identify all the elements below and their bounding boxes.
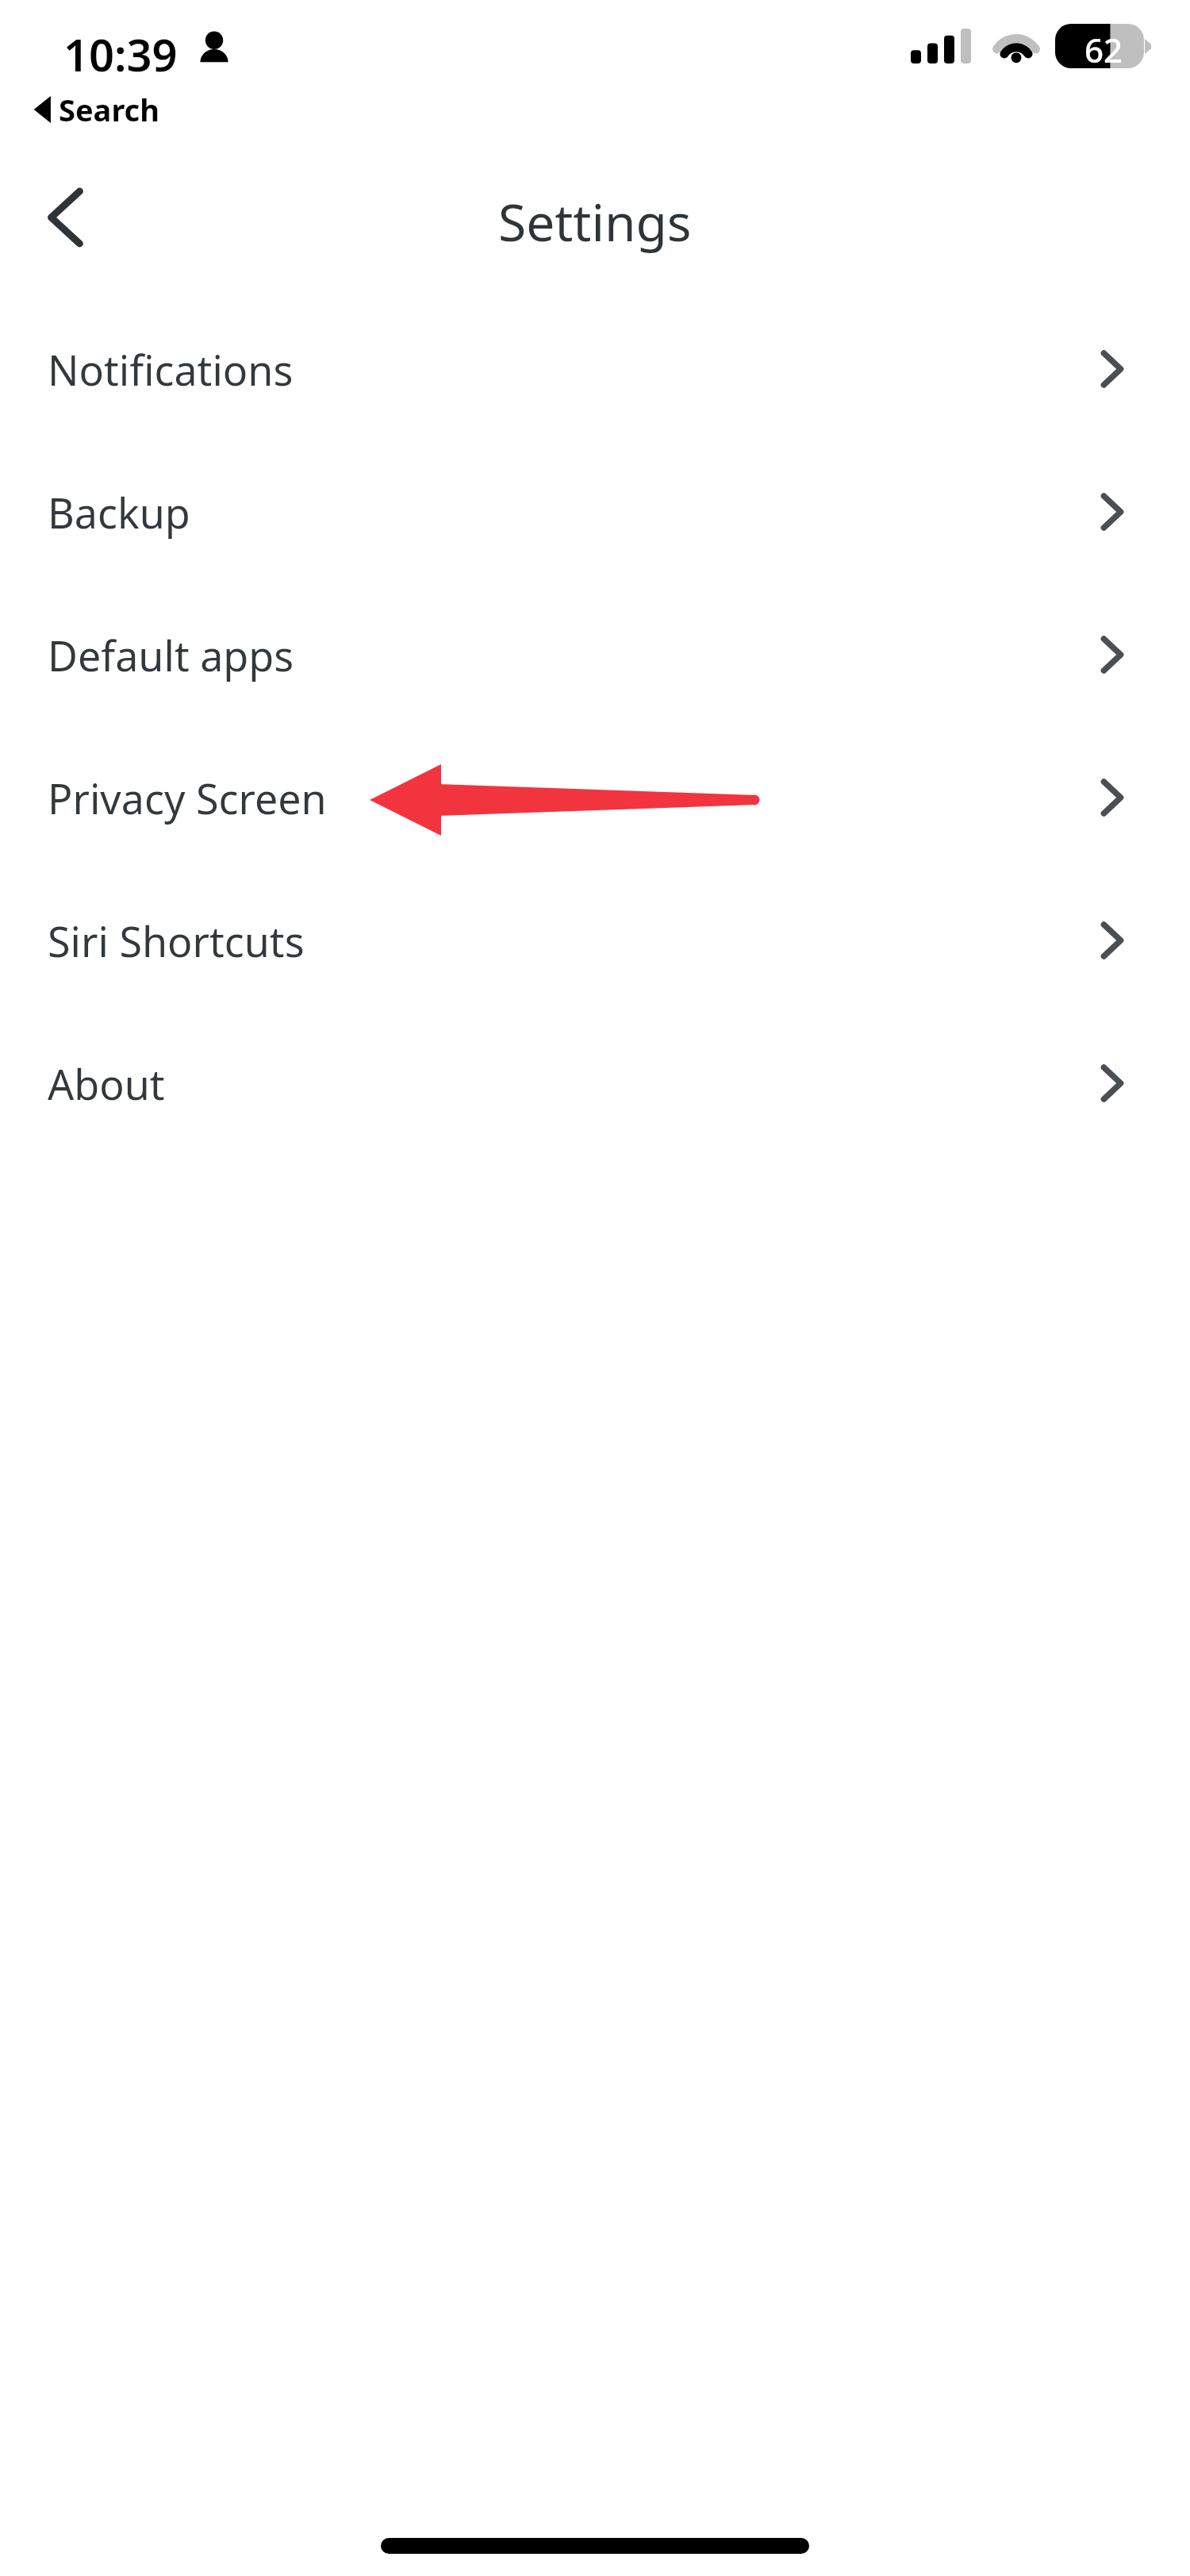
button[interactable]: Back xyxy=(24,176,106,259)
staticText: Privacy Screen xyxy=(48,770,1101,826)
staticText: 10:39 xyxy=(63,24,178,84)
staticText: Search xyxy=(59,89,159,130)
staticText: Backup xyxy=(48,484,1101,540)
button[interactable]: Search xyxy=(32,89,159,130)
button[interactable]: Notifications xyxy=(0,298,1190,440)
button[interactable]: Default apps xyxy=(0,583,1190,726)
staticText: Default apps xyxy=(48,627,1101,683)
staticText: About xyxy=(48,1055,1101,1112)
button[interactable]: Siri Shortcuts xyxy=(0,869,1190,1012)
staticText: Notifications xyxy=(48,341,1101,398)
button[interactable]: Backup xyxy=(0,440,1190,583)
staticText: Siri Shortcuts xyxy=(48,913,1101,969)
button[interactable]: About xyxy=(0,1012,1190,1155)
staticText: 62 xyxy=(1084,27,1123,65)
button[interactable]: Privacy Screen xyxy=(0,726,1190,869)
staticText: Settings xyxy=(498,187,692,256)
